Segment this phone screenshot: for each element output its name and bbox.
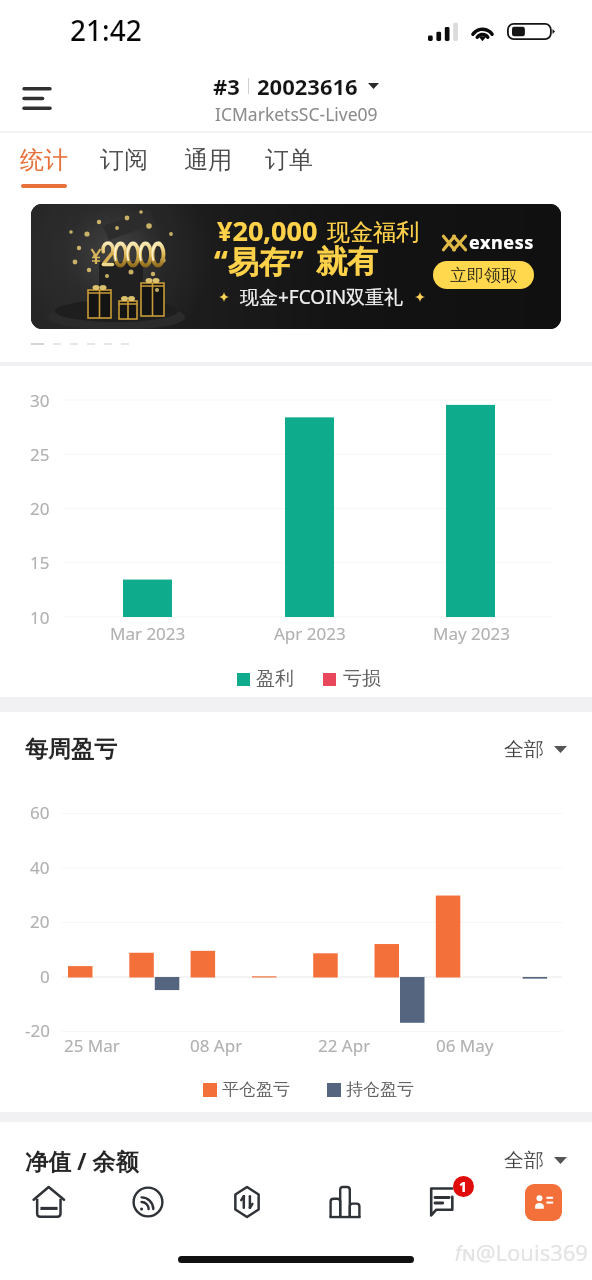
staticText: 20 (30, 910, 50, 933)
staticText: 40 (30, 856, 50, 879)
button[interactable]: Home (25, 1178, 73, 1226)
staticText: 订阅 (100, 145, 148, 175)
button[interactable]: 统计 (8, 134, 80, 188)
button[interactable]: Menu (13, 74, 61, 122)
staticText: Apr 2023 (274, 622, 346, 645)
button[interactable]: Account (519, 1178, 567, 1226)
button[interactable]: ¥20,000 (31, 204, 561, 329)
button[interactable]: #3 (213, 71, 379, 126)
staticText: ¥20,000 (217, 212, 318, 249)
button[interactable]: Signals (124, 1178, 172, 1226)
button[interactable]: Trade (223, 1178, 271, 1226)
staticText: 净值 / 余额 (25, 1145, 139, 1176)
staticText: 订单 (265, 145, 313, 175)
staticText: 现金福利 (327, 218, 419, 247)
button[interactable]: 通用 (172, 134, 244, 188)
staticText: 15 (30, 551, 50, 574)
staticText: 25 Mar (64, 1034, 120, 1057)
staticText: 现金+FCOIN双重礼 (240, 284, 404, 310)
staticText: -20 (25, 1019, 50, 1042)
staticText: exness (469, 230, 534, 255)
staticText: 统计 (20, 145, 68, 175)
staticText: 每周盈亏 (25, 735, 117, 764)
staticText: 20023616 (257, 71, 358, 101)
staticText: 08 Apr (190, 1034, 243, 1057)
staticText: 22 Apr (318, 1034, 371, 1057)
staticText: 25 (30, 443, 50, 466)
staticText: “易存” (214, 240, 304, 282)
button[interactable]: 订单 (253, 134, 325, 188)
staticText: 持仓盈亏 (346, 1079, 414, 1100)
staticText: 立即领取 (450, 265, 518, 286)
staticText: 全部 (504, 737, 544, 762)
button[interactable]: Charts (321, 1178, 369, 1226)
button[interactable]: 全部 (504, 737, 567, 762)
button[interactable]: Messages (420, 1178, 468, 1226)
staticText: 30 (30, 389, 50, 412)
staticText: 20 (30, 497, 50, 520)
staticText: 1 (459, 1177, 468, 1196)
staticText: 𝑓ɴ@Louis369 (455, 1237, 588, 1267)
staticText: 平仓盈亏 (222, 1079, 290, 1100)
staticText: 06 May (436, 1034, 494, 1057)
button[interactable]: 立即领取 (433, 261, 534, 289)
button[interactable]: 全部 (504, 1148, 567, 1173)
staticText: 就有 (316, 242, 378, 281)
staticText: ICMarketsSC-Live09 (215, 102, 378, 126)
staticText: 通用 (184, 145, 232, 175)
staticText: 10 (30, 606, 50, 629)
staticText: 21:42 (70, 11, 142, 49)
staticText: 60 (30, 801, 50, 824)
staticText: 盈利 (256, 667, 294, 691)
staticText: 亏损 (343, 667, 381, 691)
staticText: 0 (40, 965, 50, 988)
staticText: #3 (213, 71, 240, 101)
button[interactable]: 订阅 (88, 134, 160, 188)
staticText: Mar 2023 (110, 622, 186, 645)
staticText: 全部 (504, 1148, 544, 1173)
staticText: May 2023 (433, 622, 510, 645)
